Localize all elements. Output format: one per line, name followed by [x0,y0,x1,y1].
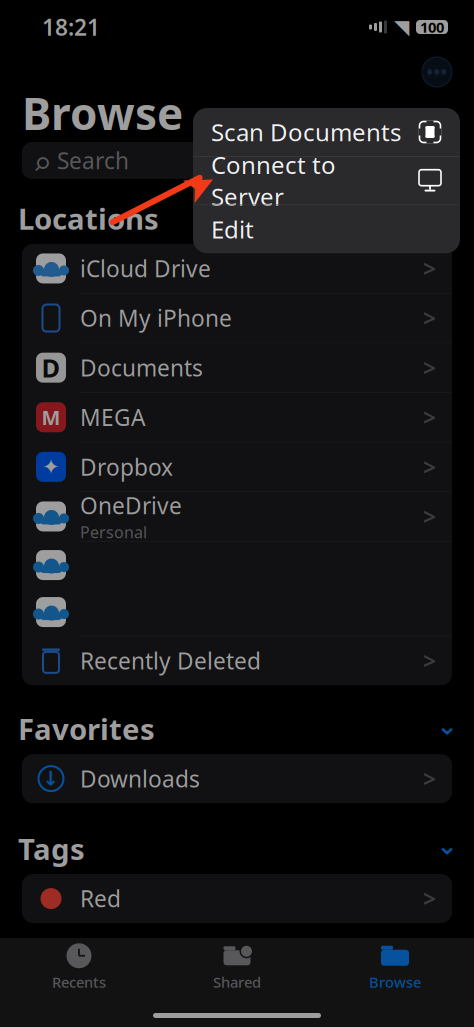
button[interactable]: iCloud Drive [22,244,452,293]
staticText: ✦ [42,455,60,479]
staticText: Browse [22,84,183,142]
button[interactable]: Browse [316,934,474,996]
button[interactable]: Recently Deleted [22,636,452,685]
staticText: ⌄ [436,711,457,740]
button[interactable]: ↓ [22,754,452,803]
staticText: ••• [426,60,447,83]
button[interactable]: On My iPhone [22,294,452,343]
staticText: Red [80,883,121,914]
button[interactable]: Red [22,874,452,923]
button[interactable]: More [422,57,452,87]
staticText: MEGA [80,402,145,432]
staticText: Browse [369,972,421,992]
staticText: > [423,764,436,794]
staticText: ⌄ [436,831,457,860]
staticText: > [423,452,436,482]
staticText: 100 [420,17,444,37]
button[interactable]: Collapse Favorites [430,714,464,744]
button[interactable]: Connect to Server [193,157,460,205]
button[interactable]: Scan Documents [193,108,460,156]
staticText: On My iPhone [80,303,232,333]
button[interactable]: Edit [193,205,460,253]
staticText: > [423,402,436,432]
staticText: iCloud Drive [80,253,211,283]
button[interactable]: D [22,343,452,392]
staticText: > [423,303,436,333]
staticText: M [41,404,60,431]
staticText: D [41,351,60,384]
staticText: Downloads [80,764,200,794]
staticText: > [423,353,436,383]
staticText: Favorites [18,709,155,748]
staticText: > [423,501,436,531]
staticText: Search [57,145,129,175]
staticText: > [423,883,436,914]
staticText: Shared [213,972,261,992]
staticText: Scan Documents [211,116,401,148]
staticText: ↓ [42,767,59,790]
button[interactable]: Shared [158,934,316,996]
staticText: > [423,646,436,676]
staticText: Connect to Server [211,149,336,212]
staticText: ◥ [394,16,409,38]
staticText: Personal [80,521,147,543]
staticText: Recents [52,972,106,992]
staticText: Tags [18,829,85,868]
staticText: ⌕ [34,135,50,186]
staticText: > [423,253,436,283]
staticText: ➤ [182,162,216,208]
button[interactable]: OneDrive [22,492,452,541]
staticText: OneDrive [80,490,182,520]
button[interactable]: Collapse Tags [430,834,464,864]
button[interactable]: Recents [0,934,158,996]
button[interactable]: ✦ [22,442,452,491]
button[interactable]: ⌕ [0,142,474,179]
staticText: Locations [18,199,159,238]
staticText: Edit [211,213,254,245]
staticText: 18:21 [42,12,100,42]
button[interactable] [22,542,452,589]
button[interactable] [22,589,452,636]
staticText: Documents [80,353,203,383]
button[interactable]: M [22,393,452,442]
staticText: Dropbox [80,452,173,482]
staticText: Recently Deleted [80,646,261,676]
